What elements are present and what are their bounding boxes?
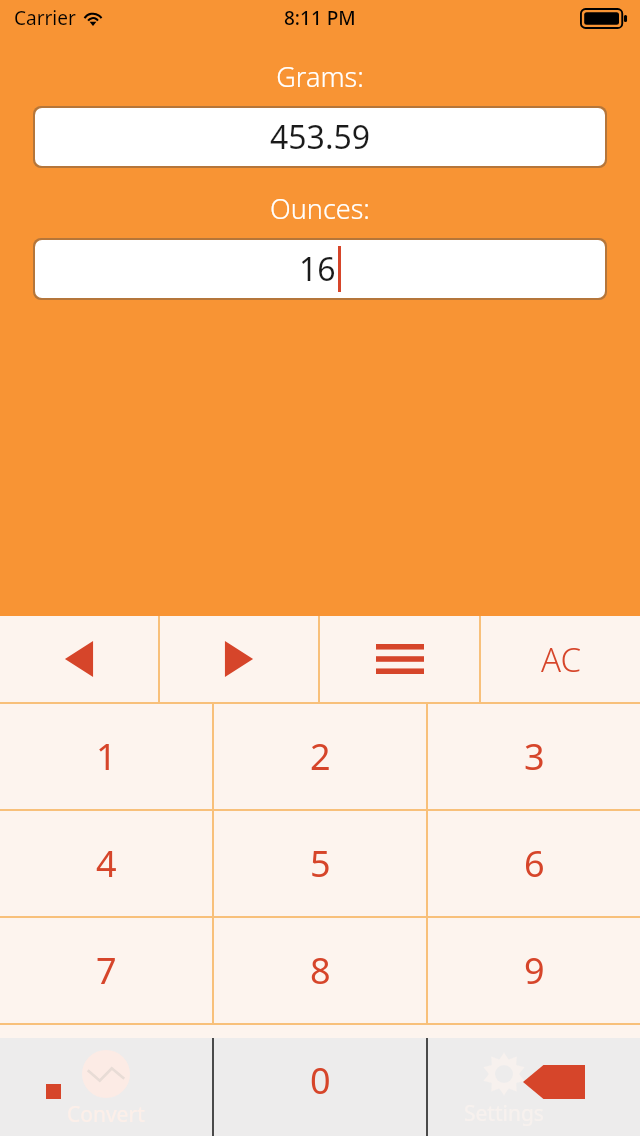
button[interactable]: Next field	[160, 616, 318, 702]
button[interactable]: Settings	[428, 1038, 640, 1136]
staticText: 7	[96, 946, 117, 995]
button[interactable]: 0	[214, 1038, 426, 1136]
staticText: 1	[96, 732, 117, 781]
button[interactable]: Previous field	[0, 616, 158, 702]
staticText: Ounces:	[270, 190, 370, 227]
button[interactable]: Convert	[0, 1038, 212, 1136]
button[interactable]: 16	[35, 240, 605, 298]
button[interactable]: Menu	[320, 616, 479, 702]
staticText: 5	[310, 839, 331, 888]
staticText: 453.59	[270, 115, 371, 159]
button[interactable]: 4	[0, 811, 212, 916]
staticText: AC	[541, 637, 581, 682]
button[interactable]: 3	[428, 704, 640, 809]
staticText: 6	[524, 839, 545, 888]
staticText: 8:11 PM	[284, 5, 356, 31]
button[interactable]: 9	[428, 918, 640, 1023]
button[interactable]: 7	[0, 918, 212, 1023]
staticText: 4	[96, 839, 117, 888]
staticText: 9	[524, 946, 545, 995]
button[interactable]: 5	[214, 811, 426, 916]
staticText: Carrier	[14, 5, 76, 31]
button[interactable]: 1	[0, 704, 212, 809]
staticText: 2	[310, 732, 331, 781]
staticText: Settings	[464, 1099, 544, 1128]
staticText: 0	[310, 1056, 331, 1105]
staticText: Grams:	[276, 58, 364, 95]
button[interactable]: 6	[428, 811, 640, 916]
button[interactable]: 8	[214, 918, 426, 1023]
staticText: 16	[299, 247, 336, 291]
button[interactable]: 2	[214, 704, 426, 809]
button[interactable]: 453.59	[35, 108, 605, 166]
staticText: Convert	[67, 1100, 145, 1129]
staticText: 8	[310, 946, 331, 995]
button[interactable]: AC	[481, 616, 640, 702]
staticText: 3	[524, 732, 545, 781]
